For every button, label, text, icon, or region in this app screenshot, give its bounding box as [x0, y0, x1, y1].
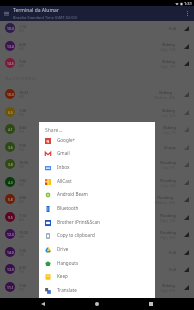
button[interactable]: Home: [86, 298, 108, 310]
button[interactable]: Google+: [39, 133, 155, 147]
button[interactable]: Brother iPrint&Scan: [39, 215, 155, 229]
staticText: 1:31: [184, 1, 192, 6]
staticText: Ebbing: [162, 59, 175, 64]
staticText: AM: [19, 218, 24, 222]
button[interactable]: Keep: [39, 269, 155, 283]
staticText: 7:38: [19, 283, 27, 288]
staticText: Ebbing: [162, 283, 175, 288]
staticText: Google+: [57, 137, 76, 143]
staticText: Flooding: [160, 213, 176, 218]
staticText: Medium, 46%: [154, 200, 176, 204]
button[interactable]: Inbox: [39, 160, 155, 174]
button[interactable]: 13.9: [0, 260, 194, 278]
staticText: Ebbing: [162, 108, 175, 113]
staticText: Brother iPrint&Scan: [57, 219, 100, 225]
staticText: 1:38: [19, 108, 27, 113]
staticText: 13.4: [7, 44, 14, 49]
button[interactable]: 13.4: [0, 37, 194, 55]
button[interactable]: Translate: [39, 283, 155, 297]
button[interactable]: 6.5: [0, 103, 194, 121]
button[interactable]: Recent apps: [140, 298, 162, 310]
staticText: 4.3: [8, 180, 13, 185]
staticText: AM: [19, 95, 24, 99]
staticText: Thu 12/11/2014: [5, 76, 36, 82]
button[interactable]: 12.3: [0, 225, 194, 243]
staticText: PM: [19, 270, 24, 274]
staticText: Keep: [57, 273, 68, 279]
staticText: 6.5: [8, 110, 13, 115]
staticText: 1:02: [19, 178, 27, 183]
staticText: 7:50: [19, 143, 27, 148]
button[interactable]: Drive: [39, 242, 155, 256]
staticText: 13.9: [7, 267, 14, 272]
staticText: 1:14: [19, 24, 27, 29]
staticText: 4:20: [19, 42, 27, 47]
staticText: Drive: [57, 246, 69, 252]
button[interactable]: Navigation drawer: [2, 9, 11, 18]
staticText: Ebbing: [163, 125, 176, 130]
button[interactable]: 11.1: [0, 278, 194, 296]
staticText: 4:44: [19, 125, 27, 130]
staticText: 7:14: [19, 213, 27, 218]
staticText: 14.5: [7, 61, 14, 66]
staticText: 9.5: [8, 215, 13, 220]
staticText: Flooding: [160, 160, 176, 165]
staticText: 10.3: [7, 26, 14, 31]
staticText: 10:20: [19, 230, 29, 235]
staticText: 5.8: [8, 197, 13, 202]
button[interactable]: 4.1: [0, 120, 194, 138]
staticText: Copy to clipboard: [57, 232, 95, 238]
button[interactable]: 3.8: [0, 155, 194, 173]
staticText: Hangouts: [57, 260, 79, 266]
button[interactable]: Gmail: [39, 146, 155, 160]
staticText: Ebbing: [159, 90, 172, 95]
staticText: 1:26: [19, 248, 27, 253]
staticText: PM: [19, 288, 24, 292]
button[interactable]: AllCast: [39, 174, 155, 188]
button[interactable]: 10.3: [0, 85, 194, 103]
staticText: Gmail: [57, 150, 70, 156]
staticText: 3.8: [8, 162, 13, 167]
staticText: 7:26: [19, 59, 27, 64]
button[interactable]: 14.0: [0, 243, 194, 261]
staticText: AM: [19, 29, 24, 33]
button[interactable]: Bluetooth: [39, 201, 155, 215]
button[interactable]: 3.6: [0, 138, 194, 156]
staticText: High, 74%: [160, 64, 176, 68]
staticText: Flooding: [160, 178, 176, 183]
button[interactable]: 5.8: [0, 190, 194, 208]
staticText: 10:32: [19, 90, 29, 95]
button[interactable]: Hangouts: [39, 256, 155, 270]
button[interactable]: More options: [183, 9, 192, 18]
button[interactable]: 14.5: [0, 54, 194, 72]
staticText: Bluetooth: [57, 205, 79, 211]
staticText: Empty: [164, 145, 176, 150]
staticText: Flooding: [157, 195, 173, 200]
staticText: Terminal da Alumar: [13, 7, 59, 14]
staticText: PM: [19, 165, 24, 169]
staticText: 11.1: [7, 285, 14, 290]
staticText: PM: [19, 253, 24, 257]
button[interactable]: 9.5: [0, 208, 194, 226]
button[interactable]: 10.3: [0, 19, 194, 37]
staticText: 4:08: [19, 195, 27, 200]
button[interactable]: 4.3: [0, 173, 194, 191]
staticText: Full: [169, 267, 176, 272]
staticText: Android Beam: [57, 191, 88, 197]
button[interactable]: Back: [32, 298, 54, 310]
staticText: Medium, 49%: [154, 95, 176, 99]
staticText: PM: [19, 130, 24, 134]
button[interactable]: Android Beam: [39, 187, 155, 201]
button[interactable]: Copy to clipboard: [39, 228, 155, 242]
staticText: PM: [19, 148, 24, 152]
staticText: 4.1: [8, 127, 13, 132]
staticText: AM: [19, 200, 24, 204]
staticText: 12.3: [7, 232, 14, 237]
staticText: 10:56: [19, 160, 29, 165]
